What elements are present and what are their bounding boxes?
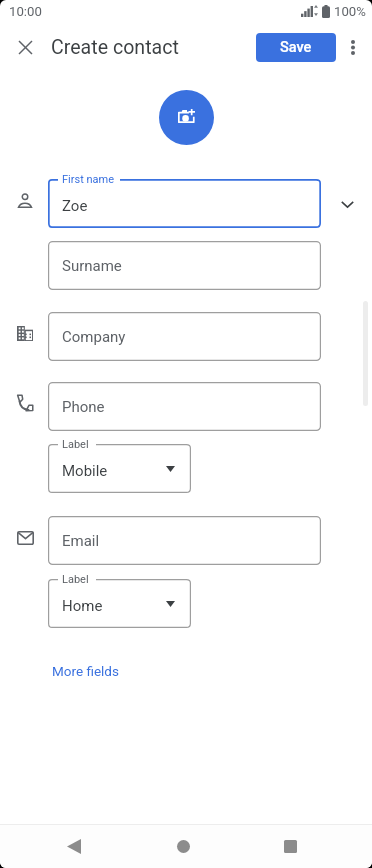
button[interactable]: Label [48,444,191,493]
staticText: Save [280,39,312,56]
button[interactable]: Home [159,822,207,868]
button[interactable]: Save [256,33,336,62]
button[interactable]: More fields [44,657,127,685]
button[interactable]: Recents [266,822,314,868]
button[interactable]: Add photo [159,90,214,145]
staticText: 10:00 [9,4,42,19]
button[interactable]: Expand name fields [334,191,360,217]
button[interactable]: Phone [48,382,321,431]
button[interactable]: Company [48,312,321,361]
staticText: Phone [62,398,105,416]
staticText: 100% [334,4,366,19]
staticText: Surname [62,257,122,275]
button[interactable]: First name [48,179,321,228]
button[interactable]: Email [48,516,321,565]
staticText: Email [62,532,100,550]
button[interactable]: Surname [48,241,321,290]
staticText: Label [62,438,89,451]
button[interactable]: Close [9,31,41,63]
staticText: Home [62,597,103,615]
staticText: Company [62,328,126,346]
staticText: More fields [52,663,119,679]
button[interactable]: Label [48,579,191,628]
button[interactable]: Back [50,822,98,868]
staticText: First name [62,173,115,186]
staticText: Label [62,573,89,586]
staticText: Zoe [62,197,88,215]
staticText: Mobile [62,462,108,480]
staticText: Create contact [51,36,179,59]
button[interactable]: More options [337,31,369,63]
